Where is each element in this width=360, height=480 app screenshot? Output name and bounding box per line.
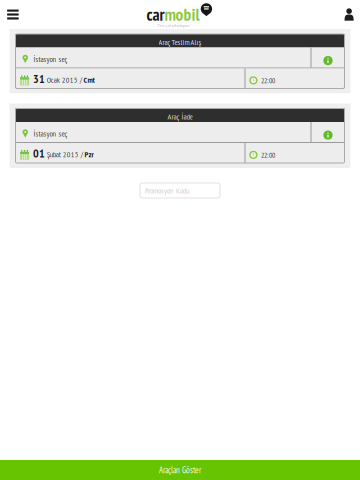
staticText: İstasyon seç <box>33 54 67 64</box>
staticText: Şubat 2015 / <box>47 149 83 159</box>
staticText: Cmt <box>83 74 94 85</box>
button[interactable]: İstasyon seç <box>15 47 344 67</box>
staticText: Araçları Göster <box>159 464 201 476</box>
staticText: 22:00 <box>261 150 275 160</box>
button[interactable]: Promosyon Kodu <box>140 183 220 198</box>
staticText: Ocak 2015 / <box>47 74 82 85</box>
staticText: Promosyon Kodu <box>145 185 189 196</box>
button[interactable]: Araçları Göster <box>0 460 360 480</box>
staticText: 22:00 <box>261 76 275 85</box>
staticText: 31 <box>33 71 45 86</box>
button[interactable]: Menu <box>0 2 25 27</box>
staticText: car <box>146 3 164 26</box>
staticText: "Yeni yol arkadaşınız" <box>157 22 191 28</box>
staticText: Araç İade <box>167 111 192 122</box>
staticText: İstasyon seç <box>33 128 67 139</box>
staticText: Araç Teslim Alış <box>158 37 201 47</box>
button[interactable]: 31 <box>15 68 344 88</box>
staticText: 01 <box>33 145 45 161</box>
staticText: Pzr <box>84 149 93 159</box>
button[interactable]: Account <box>334 2 360 27</box>
button[interactable]: İstasyon seç <box>15 122 344 142</box>
button[interactable]: 01 <box>15 143 344 163</box>
staticText: mobil <box>164 3 199 26</box>
